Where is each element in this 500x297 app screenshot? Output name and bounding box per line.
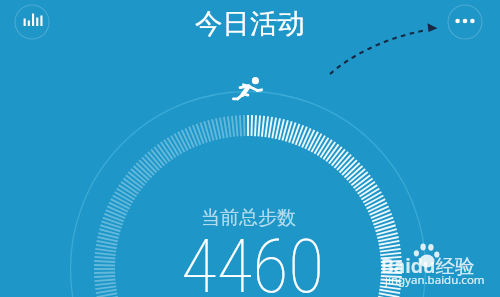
staticText: jingyan.baidu.com (385, 272, 485, 288)
button[interactable]: More options (447, 4, 483, 40)
button[interactable]: Statistics (14, 4, 50, 40)
staticText: 今日活动 (195, 7, 305, 42)
staticText: 当前总步数 (201, 206, 296, 230)
staticText: 4460 (181, 223, 325, 297)
staticText: Baidu经验 (381, 252, 475, 279)
